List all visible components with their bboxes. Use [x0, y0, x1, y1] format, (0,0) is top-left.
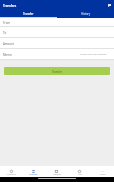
staticText: From [3, 21, 11, 25]
staticText: Transfer [29, 173, 38, 176]
button[interactable]: Pay [68, 170, 91, 177]
button[interactable]: Amount [0, 38, 114, 49]
staticText: To [3, 31, 7, 35]
button[interactable]: History [57, 11, 114, 18]
staticText: Deposit [53, 173, 61, 176]
button[interactable]: Deposit [45, 170, 68, 177]
button[interactable]: Memo [0, 49, 114, 60]
staticText: More [100, 173, 106, 176]
staticText: Amount [3, 42, 14, 46]
button[interactable]: Messages [106, 2, 113, 9]
staticText: History [81, 12, 91, 16]
staticText: Pay [78, 173, 82, 176]
button[interactable]: Transfer [4, 67, 110, 75]
button[interactable]: More [91, 170, 114, 177]
staticText: Transfers [3, 4, 17, 8]
button[interactable]: From [0, 18, 114, 27]
staticText: Shown with the recipient [80, 53, 107, 56]
button[interactable]: Accounts [0, 170, 22, 177]
staticText: Transfer [23, 12, 34, 16]
button[interactable]: Transfer [0, 11, 57, 18]
staticText: Memo [3, 53, 12, 57]
staticText: Transfer [52, 70, 62, 73]
staticText: Accounts [6, 173, 16, 176]
button[interactable]: To [0, 27, 114, 38]
button[interactable]: Transfer [22, 170, 45, 177]
